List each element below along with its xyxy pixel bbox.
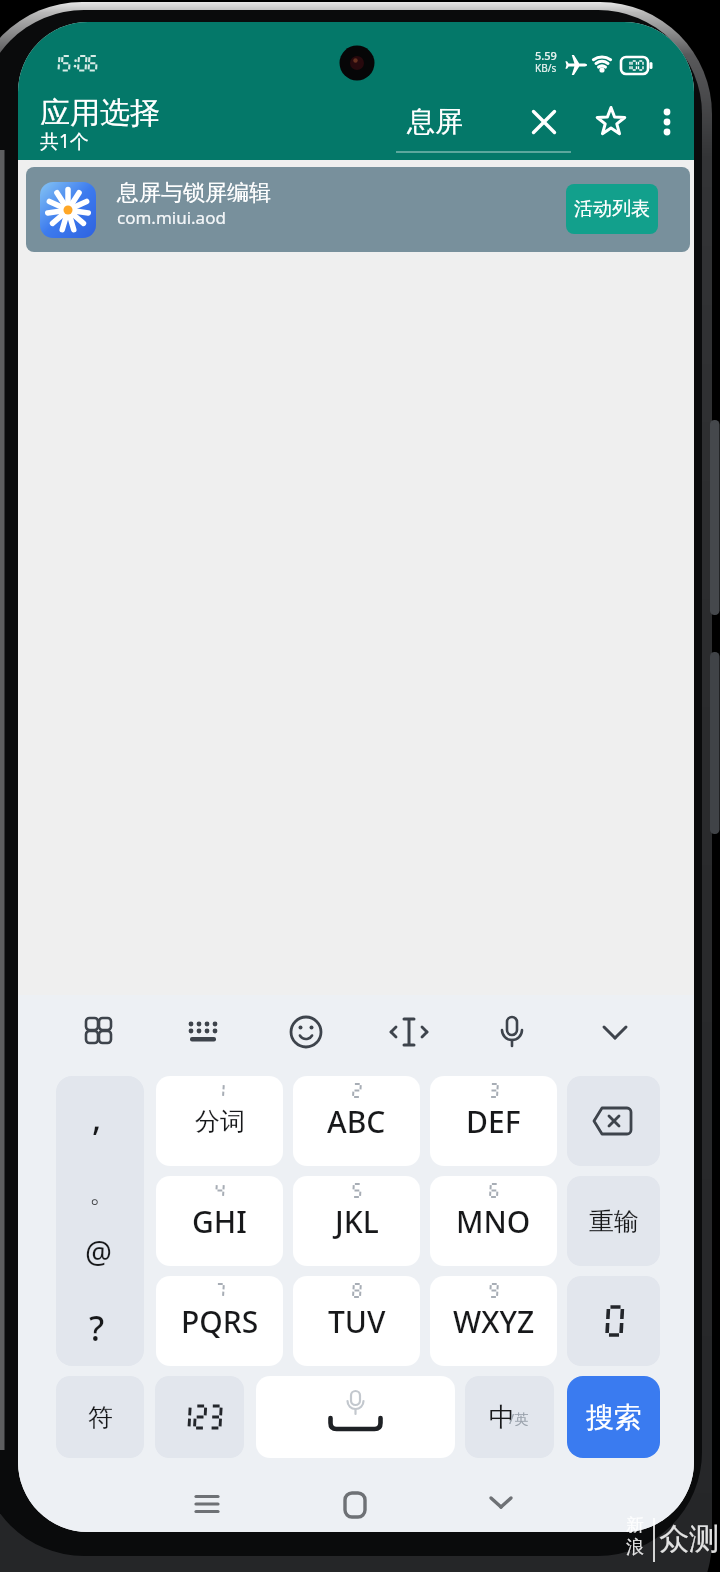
button[interactable]: GHI [156,1176,283,1266]
button[interactable] [585,1006,645,1058]
button[interactable] [256,1376,455,1458]
staticText: PQRS [181,1301,259,1342]
staticText: 息屏与锁屏编辑 [117,179,271,207]
button[interactable] [276,1006,336,1058]
staticText: 搜索 [586,1400,642,1435]
button[interactable] [56,1076,144,1366]
button[interactable]: MNO [430,1176,557,1266]
button[interactable] [379,1006,439,1058]
button[interactable] [567,1076,660,1166]
button[interactable] [647,100,687,144]
button[interactable] [396,98,571,150]
button[interactable]: PQRS [156,1276,283,1366]
button[interactable] [177,1480,237,1528]
staticText: 符 [88,1402,113,1433]
button[interactable] [173,1006,233,1058]
staticText: ABC [327,1101,386,1142]
staticText: DEF [466,1101,521,1142]
staticText: JKL [335,1201,379,1242]
staticText: 应用选择 [40,94,160,132]
staticText: WXYZ [453,1301,535,1342]
button[interactable]: WXYZ [430,1276,557,1366]
button[interactable]: 符 [56,1376,144,1458]
staticText: 活动列表 [574,197,650,221]
staticText: 众测 [659,1520,719,1558]
button[interactable]: DEF [430,1076,557,1166]
button[interactable]: JKL [293,1176,420,1266]
staticText: 中 [489,1401,515,1434]
button[interactable] [471,1480,531,1528]
button[interactable]: 活动列表 [566,184,658,234]
staticText: 浪 [626,1536,644,1559]
staticText: 5.59 [535,48,557,63]
staticText: 共1个 [40,128,89,154]
staticText: 重输 [589,1206,639,1237]
staticText: ? [89,1305,105,1351]
staticText: GHI [192,1201,247,1242]
staticText: 息屏 [407,104,463,139]
staticText: 分词 [195,1106,245,1137]
staticText: MNO [456,1201,531,1242]
staticText: 。 [89,1177,115,1210]
button[interactable]: 分词 [156,1076,283,1166]
button[interactable] [567,1276,660,1366]
button[interactable] [155,1376,244,1458]
button[interactable]: 中 [465,1376,554,1458]
staticText: KB/s [535,61,557,75]
staticText: com.miui.aod [117,206,226,229]
button[interactable] [522,100,566,144]
button[interactable] [70,1006,130,1058]
button[interactable]: 重输 [567,1176,660,1266]
button[interactable]: 搜索 [567,1376,660,1458]
button[interactable] [325,1481,385,1529]
button[interactable]: 息屏与锁屏编辑 [26,167,690,252]
staticText: @ [85,1231,112,1272]
button[interactable] [482,1006,542,1058]
staticText: 新 [626,1514,644,1537]
button[interactable] [589,100,633,144]
button[interactable]: ABC [293,1076,420,1166]
staticText: TUV [328,1301,386,1342]
staticText: , [92,1095,102,1141]
button[interactable]: TUV [293,1276,420,1366]
staticText: /英 [509,1409,529,1428]
